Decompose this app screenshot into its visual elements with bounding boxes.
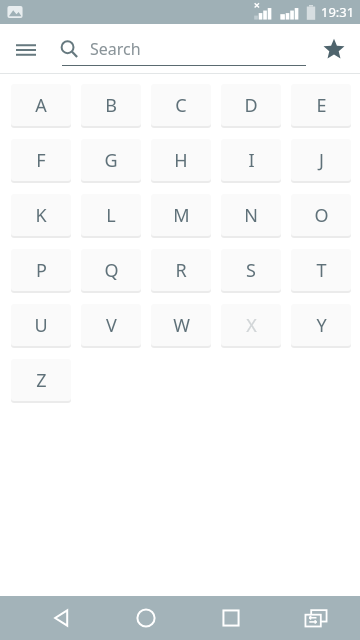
button[interactable]: D bbox=[221, 84, 281, 126]
button[interactable]: A bbox=[11, 84, 71, 126]
staticText: B bbox=[105, 93, 117, 118]
button[interactable]: G bbox=[81, 139, 141, 181]
button[interactable]: Back bbox=[40, 596, 84, 640]
staticText: 19:31 bbox=[321, 3, 355, 21]
button[interactable]: P bbox=[11, 249, 71, 291]
staticText: E bbox=[316, 93, 327, 118]
staticText: I bbox=[248, 148, 255, 173]
staticText: G bbox=[104, 148, 118, 173]
button[interactable]: F bbox=[11, 139, 71, 181]
staticText: K bbox=[35, 203, 47, 228]
staticText: O bbox=[314, 203, 329, 228]
button[interactable]: Search bbox=[52, 32, 86, 66]
staticText: L bbox=[106, 203, 116, 228]
staticText: J bbox=[319, 148, 324, 173]
staticText: Search bbox=[90, 38, 141, 60]
button[interactable]: E bbox=[291, 84, 351, 126]
staticText: H bbox=[174, 148, 188, 173]
staticText: S bbox=[246, 258, 256, 283]
button[interactable]: Search bbox=[62, 32, 306, 66]
button: X bbox=[221, 304, 281, 346]
button[interactable]: Favorites bbox=[314, 29, 354, 69]
button[interactable]: O bbox=[291, 194, 351, 236]
staticText: R bbox=[175, 258, 187, 283]
staticText: T bbox=[316, 258, 327, 283]
button[interactable]: Q bbox=[81, 249, 141, 291]
staticText: M bbox=[173, 203, 190, 228]
staticText: D bbox=[244, 93, 258, 118]
staticText: Q bbox=[104, 258, 119, 283]
staticText: A bbox=[35, 93, 47, 118]
button[interactable]: C bbox=[151, 84, 211, 126]
button[interactable]: V bbox=[81, 304, 141, 346]
staticText: V bbox=[106, 313, 117, 338]
button[interactable]: Y bbox=[291, 304, 351, 346]
staticText: P bbox=[36, 258, 47, 283]
staticText: W bbox=[173, 313, 190, 338]
button[interactable]: Switch apps bbox=[294, 596, 338, 640]
button[interactable]: W bbox=[151, 304, 211, 346]
staticText: X bbox=[246, 313, 257, 338]
staticText: N bbox=[244, 203, 258, 228]
button[interactable]: L bbox=[81, 194, 141, 236]
staticText: F bbox=[36, 148, 46, 173]
button[interactable]: B bbox=[81, 84, 141, 126]
button[interactable]: Z bbox=[11, 359, 71, 401]
button[interactable]: I bbox=[221, 139, 281, 181]
button[interactable]: M bbox=[151, 194, 211, 236]
button[interactable]: Open navigation menu bbox=[6, 29, 46, 69]
button[interactable]: J bbox=[291, 139, 351, 181]
staticText: U bbox=[34, 313, 48, 338]
staticText: Y bbox=[316, 313, 327, 338]
button[interactable]: R bbox=[151, 249, 211, 291]
staticText: Z bbox=[36, 368, 47, 393]
staticText: C bbox=[175, 93, 187, 118]
button[interactable]: H bbox=[151, 139, 211, 181]
button[interactable]: T bbox=[291, 249, 351, 291]
button[interactable]: U bbox=[11, 304, 71, 346]
button[interactable]: Recent apps bbox=[209, 596, 253, 640]
button[interactable]: N bbox=[221, 194, 281, 236]
button[interactable]: S bbox=[221, 249, 281, 291]
button[interactable]: K bbox=[11, 194, 71, 236]
button[interactable]: Home bbox=[124, 596, 168, 640]
